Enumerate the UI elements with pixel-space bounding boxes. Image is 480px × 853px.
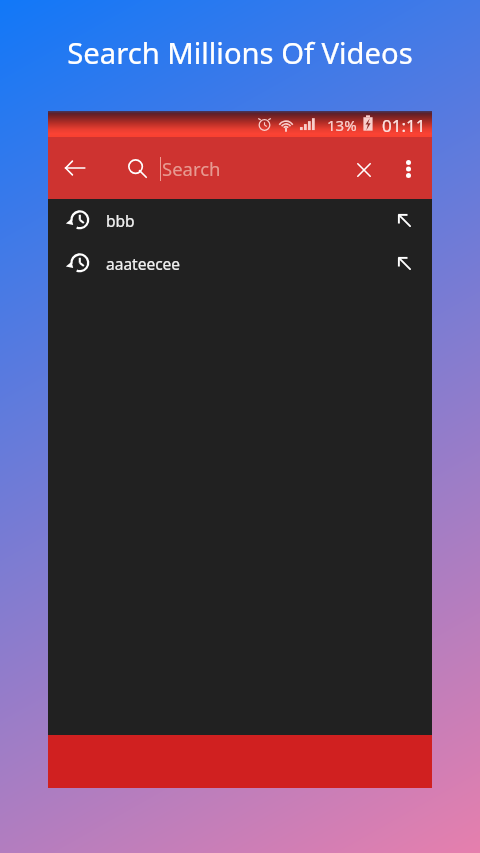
staticText: 13% [327, 115, 357, 135]
button[interactable]: bbb [48, 199, 432, 242]
staticText: Search Millions Of Videos [0, 33, 480, 73]
staticText: Search [162, 156, 221, 181]
button[interactable]: aaateecee [48, 242, 432, 285]
staticText: bbb [106, 210, 135, 231]
button[interactable]: Clear search [342, 144, 386, 188]
staticText: aaateecee [106, 253, 181, 274]
button[interactable]: More options [388, 144, 432, 188]
staticText: 01:11 [382, 114, 426, 137]
button[interactable]: Back [51, 144, 99, 192]
